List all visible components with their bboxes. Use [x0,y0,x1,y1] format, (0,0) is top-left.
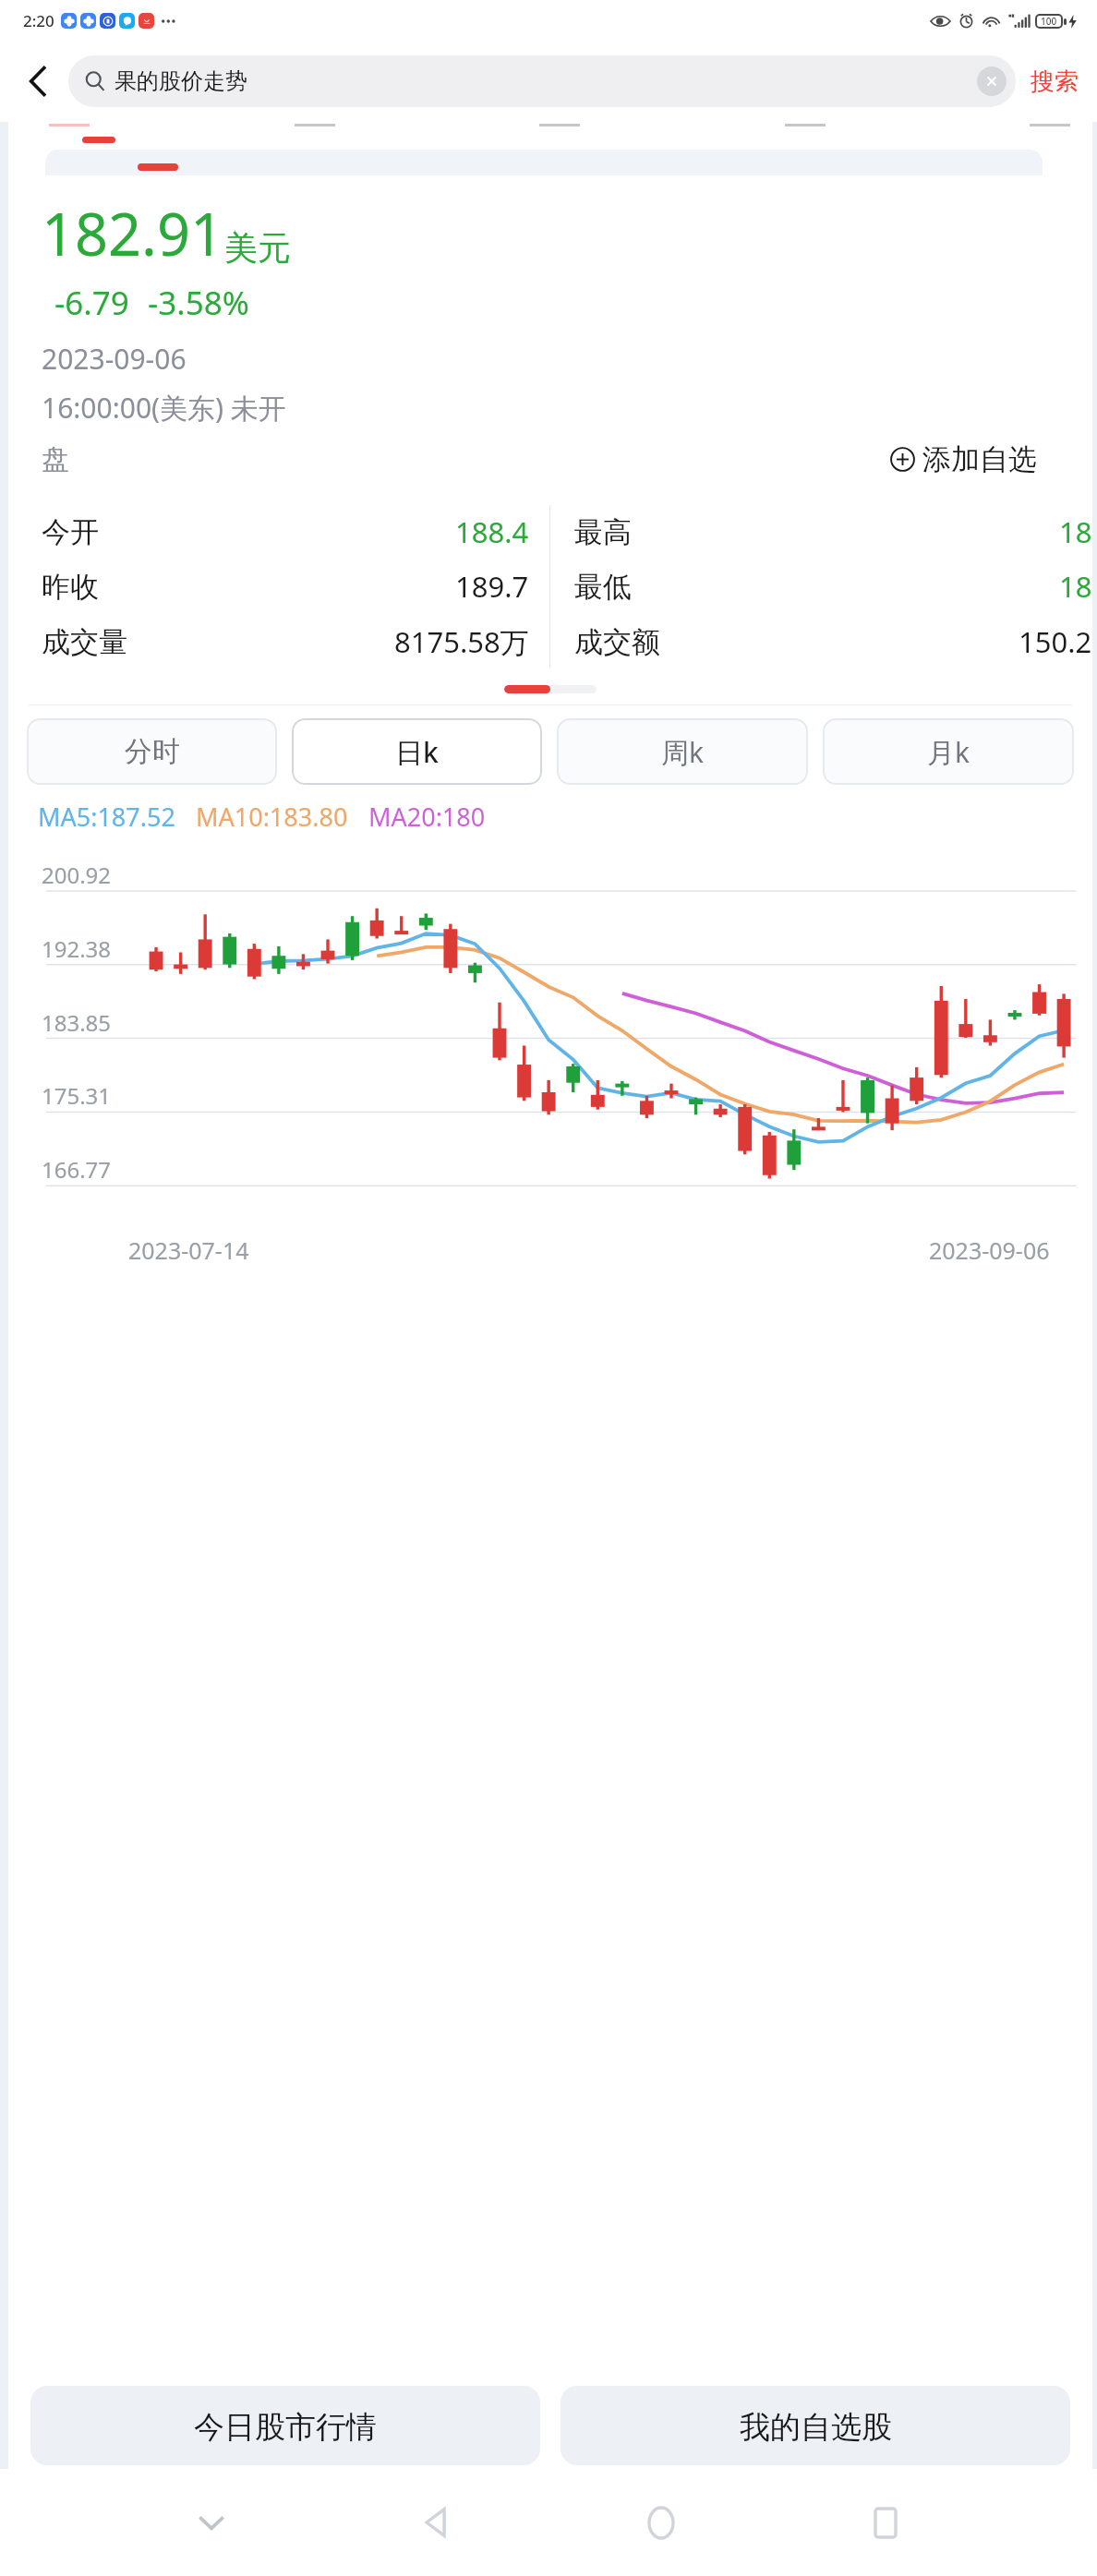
button[interactable]: 果的股价走势 [68,55,1016,107]
button[interactable]: Back [399,2486,473,2559]
button[interactable]: 分时 [27,718,277,785]
staticText: 月k [927,733,970,771]
staticText: 200.92 [42,860,112,890]
staticText: 2023-09-06 [42,340,187,378]
staticText: 2023-07-14 [128,1234,249,1266]
staticText: 16:00:00(美东) 未开 [42,389,286,427]
staticText: 最高 [574,514,632,550]
staticText: 分时 [125,734,180,769]
staticText: 最低 [574,569,632,605]
staticText: 2:20 [23,10,54,31]
staticText: 美元 [224,227,291,269]
staticText: 2023-09-06 [929,1234,1050,1266]
button[interactable]: 搜索 [1027,59,1082,104]
staticText: MA10:183.80 [196,800,348,834]
button[interactable]: 日k [292,718,542,785]
staticText: 192.38 [42,933,112,964]
staticText: 我的自选股 [740,2408,892,2447]
staticText: 日k [395,733,439,771]
staticText: 18 [1059,567,1092,606]
staticText: 182.91 [42,194,224,273]
staticText: 183.85 [42,1007,112,1038]
staticText: 昨收 [42,569,99,605]
staticText: 今日股市行情 [194,2408,377,2447]
staticText: -6.79 [54,281,129,325]
staticText: 添加自选 [922,441,1037,477]
staticText: 搜索 [1031,66,1079,97]
button[interactable]: 月k [823,718,1074,785]
staticText: 周k [661,733,705,771]
button[interactable]: 周k [557,718,808,785]
staticText: 166.77 [42,1154,112,1185]
button[interactable]: Clear [977,66,1007,96]
staticText: 18 [1059,512,1092,551]
staticText: 188.4 [455,512,529,551]
staticText: 今开 [42,514,99,550]
staticText: 成交量 [42,624,127,660]
button[interactable]: 今日股市行情 [30,2386,540,2465]
button[interactable]: Recents [849,2486,922,2559]
staticText: 8175.58万 [394,622,529,661]
staticText: 100 [1041,15,1057,28]
staticText: MA5:187.52 [38,800,175,834]
button[interactable]: Back [15,57,63,105]
staticText: 成交额 [574,624,660,660]
staticText: 189.7 [455,567,529,606]
staticText: 150.2 [1019,622,1092,661]
staticText: 盘 [42,442,69,477]
staticText: 175.31 [42,1080,112,1111]
button[interactable]: 添加自选 [890,438,1070,481]
button[interactable]: Home [624,2486,698,2559]
staticText: MA20:180 [368,800,486,834]
button[interactable]: 我的自选股 [561,2386,1070,2465]
staticText: 果的股价走势 [115,67,977,95]
staticText: -3.58% [148,281,249,325]
button[interactable]: Collapse [175,2486,248,2559]
